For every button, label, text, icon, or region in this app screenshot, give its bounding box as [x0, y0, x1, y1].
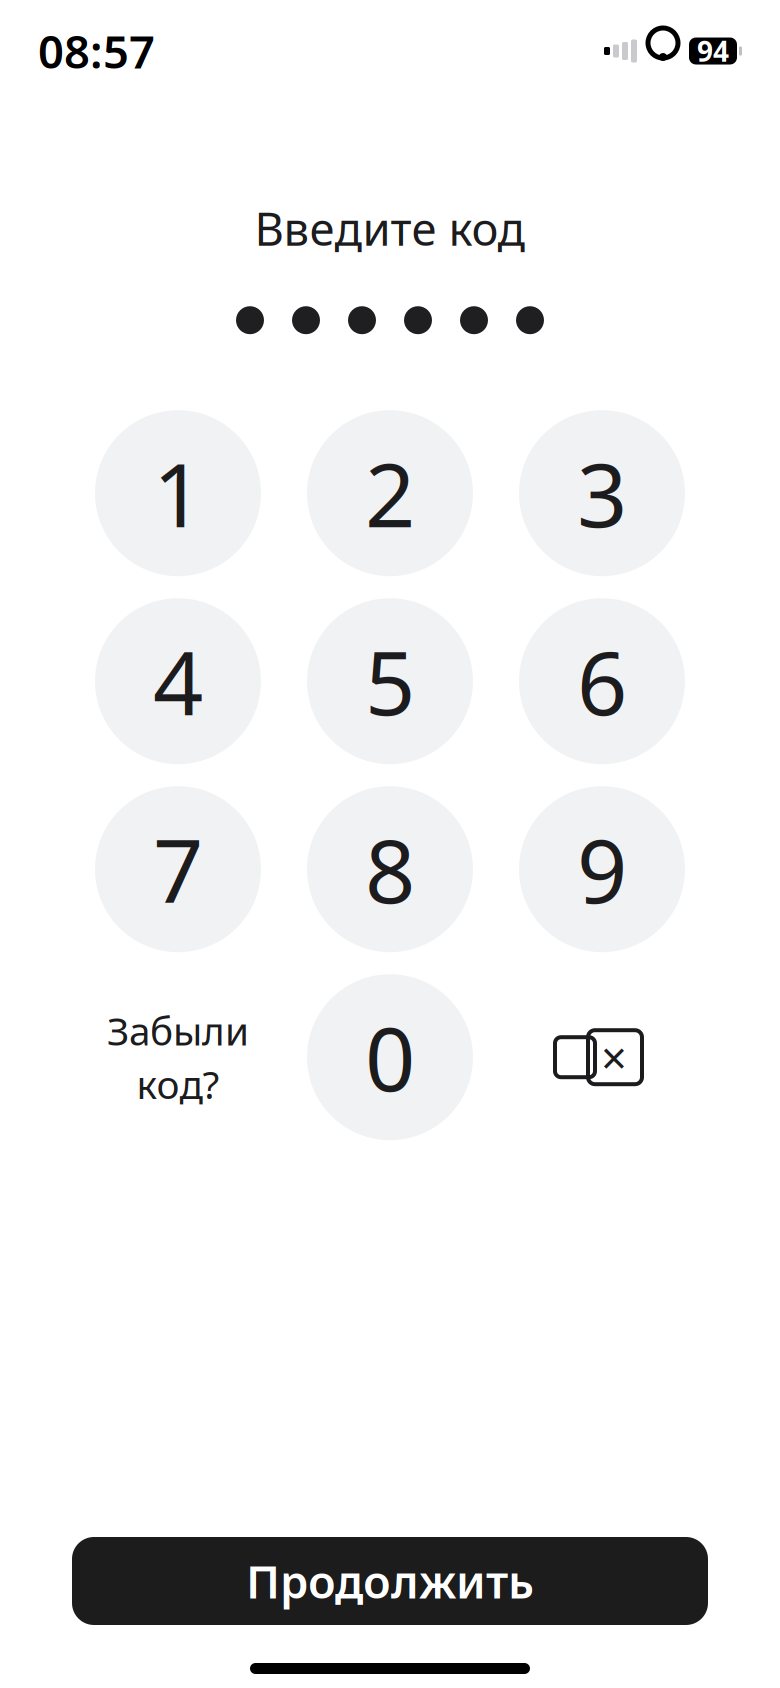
button[interactable]: Забыли — [95, 974, 261, 1140]
staticText: 2 — [365, 435, 415, 552]
staticText: 9 — [577, 811, 627, 928]
button[interactable]: 6 — [519, 598, 685, 764]
button[interactable]: 4 — [95, 598, 261, 764]
button[interactable]: 1 — [95, 410, 261, 576]
staticText: 3 — [577, 435, 627, 552]
staticText: код? — [136, 1058, 219, 1109]
staticText: 0 — [365, 999, 415, 1116]
button[interactable]: 5 — [307, 598, 473, 764]
button[interactable]: 0 — [307, 974, 473, 1140]
staticText: Продолжить — [246, 1551, 534, 1611]
staticText: 8 — [365, 811, 415, 928]
button[interactable]: 9 — [519, 786, 685, 952]
button[interactable]: 8 — [307, 786, 473, 952]
button[interactable]: Удалить — [519, 974, 685, 1140]
button[interactable]: Продолжить — [72, 1537, 708, 1625]
staticText: × — [601, 1027, 627, 1087]
button[interactable]: 7 — [95, 786, 261, 952]
staticText: 7 — [153, 811, 203, 928]
staticText: Забыли — [107, 1005, 249, 1056]
staticText: 6 — [577, 623, 627, 740]
staticText: 5 — [365, 623, 415, 740]
staticText: 94 — [697, 32, 729, 70]
button[interactable]: 2 — [307, 410, 473, 576]
staticText: 08:57 — [38, 21, 155, 81]
staticText: Введите код — [254, 198, 525, 258]
staticText: 4 — [153, 623, 203, 740]
button[interactable]: 3 — [519, 410, 685, 576]
staticText: 1 — [153, 435, 203, 552]
